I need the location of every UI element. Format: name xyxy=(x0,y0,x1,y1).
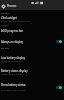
other: Settings xyxy=(1,4,6,9)
button[interactable]: Toggle xyxy=(56,40,62,43)
staticText: Customize the default clock widget xyxy=(1,20,31,26)
staticText: Process xyxy=(7,4,17,8)
staticText: Low battery display xyxy=(1,56,26,60)
staticText: Show battery status xyxy=(1,83,26,87)
button[interactable]: Toggle xyxy=(56,86,62,89)
staticText: Always-on display xyxy=(1,40,24,44)
staticText: Show on low battery xyxy=(1,60,23,63)
staticText: BATTERY xyxy=(1,47,9,50)
button[interactable]: Settings xyxy=(0,2,64,10)
staticText: Show battery status xyxy=(1,73,23,76)
button[interactable]: Clock widget xyxy=(0,15,64,26)
button[interactable]: AOD progress bar xyxy=(0,28,64,33)
button[interactable]: Low battery display xyxy=(0,55,64,64)
staticText: Clock widget xyxy=(1,16,17,20)
staticText: AOD progress bar xyxy=(1,29,24,33)
button[interactable]: Show battery status xyxy=(0,80,64,94)
button[interactable]: Always-on display xyxy=(0,38,64,45)
staticText: Battery status display xyxy=(1,69,28,73)
staticText: Animated battery icon xyxy=(1,89,25,92)
staticText: GENERAL xyxy=(1,12,10,15)
button[interactable]: Battery status display xyxy=(0,68,64,77)
